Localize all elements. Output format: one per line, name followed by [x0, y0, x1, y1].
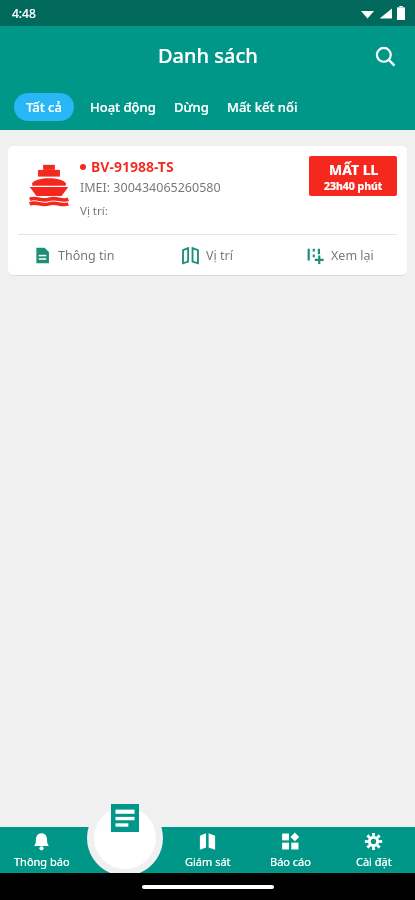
button[interactable]: Thông báo — [0, 827, 83, 873]
button[interactable]: Vị trí — [141, 235, 274, 275]
button[interactable]: Search — [365, 36, 405, 76]
button[interactable]: Thông tin — [8, 235, 141, 275]
button[interactable]: Xem lại — [274, 235, 407, 275]
staticText: Dừng — [174, 98, 209, 116]
button[interactable]: Tất cả — [14, 93, 74, 121]
staticText: Danh sách — [158, 42, 258, 69]
button[interactable]: BV-91988-TS — [8, 146, 407, 275]
staticText: Thông tin — [58, 247, 115, 264]
staticText: Tất cả — [26, 98, 62, 116]
staticText: Mất kết nối — [227, 98, 298, 116]
staticText: 23h40 phút — [324, 179, 383, 193]
button[interactable]: MẤT LL — [309, 156, 397, 196]
button[interactable]: Giám sát — [166, 827, 249, 873]
button[interactable]: Danh sách — [94, 787, 156, 849]
staticText: Thông báo — [14, 854, 70, 869]
staticText: Cài đặt — [356, 854, 392, 869]
staticText: 4:48 — [12, 5, 36, 21]
button[interactable]: Mất kết nối — [225, 93, 300, 121]
staticText: Vị trí: — [80, 203, 108, 219]
staticText: MẤT LL — [329, 160, 379, 179]
button[interactable]: Dừng — [172, 93, 211, 121]
button[interactable]: Cài đặt — [332, 827, 415, 873]
button[interactable]: Báo cáo — [249, 827, 332, 873]
staticText: Vị trí — [206, 247, 233, 264]
staticText: Hoạt động — [90, 98, 156, 116]
staticText: IMEI: 300434065260580 — [80, 179, 221, 196]
staticText: Giám sát — [185, 854, 231, 869]
button[interactable]: Hoạt động — [88, 93, 158, 121]
staticText: BV-91988-TS — [91, 157, 174, 176]
staticText: Xem lại — [331, 247, 374, 264]
staticText: Báo cáo — [270, 854, 311, 869]
